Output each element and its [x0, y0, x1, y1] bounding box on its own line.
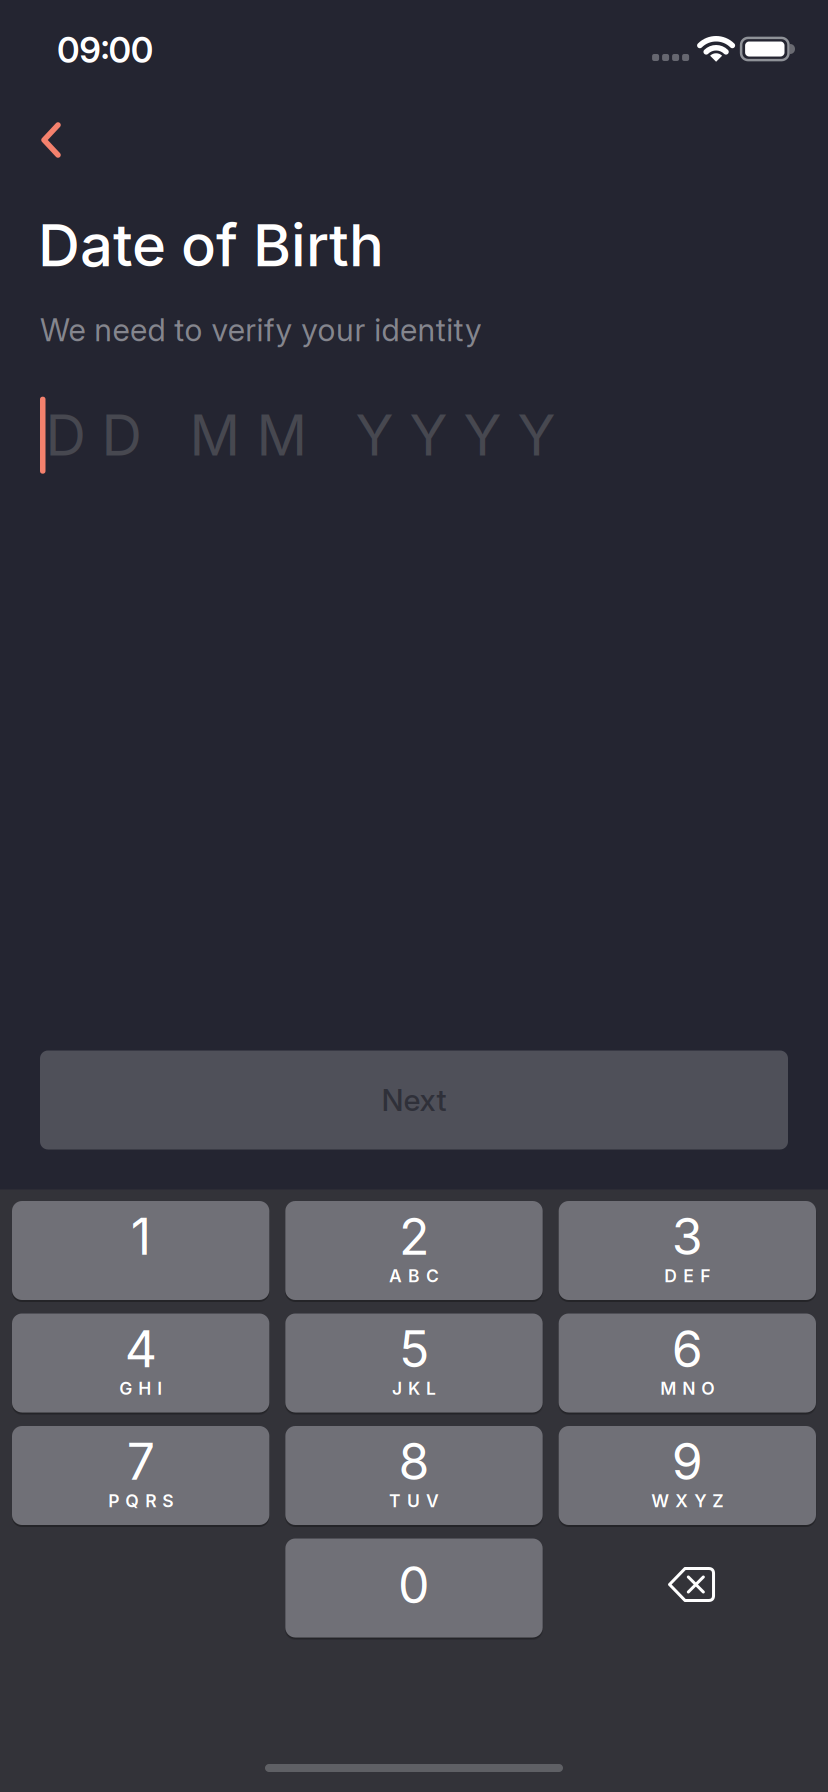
button[interactable]: 0	[285, 1538, 543, 1637]
staticText: PQRS	[108, 1490, 173, 1512]
staticText: 7	[127, 1431, 155, 1492]
staticText: 4	[125, 1319, 157, 1379]
button[interactable]: 4	[12, 1313, 269, 1412]
staticText: 1	[131, 1206, 151, 1267]
staticText: JKL	[392, 1378, 436, 1399]
button[interactable]: 9	[559, 1426, 816, 1525]
button[interactable]: Delete	[559, 1538, 816, 1637]
button[interactable]: 7	[12, 1426, 269, 1525]
button[interactable]: 6	[559, 1313, 816, 1412]
staticText: 3	[672, 1206, 703, 1267]
button[interactable]: 2	[285, 1201, 543, 1300]
staticText: 09:00	[57, 29, 154, 71]
button[interactable]: 8	[285, 1426, 543, 1525]
staticText: TUV	[389, 1490, 439, 1512]
button[interactable]: 5	[285, 1313, 543, 1412]
staticText: 2	[399, 1206, 429, 1267]
staticText: 8	[398, 1431, 429, 1492]
staticText: Next	[381, 1082, 446, 1118]
staticText: WXYZ	[651, 1490, 723, 1512]
staticText: Date of Birth	[38, 210, 384, 280]
staticText: ABC	[389, 1265, 439, 1287]
staticText: MNO	[660, 1378, 714, 1399]
button[interactable]: Next	[40, 1050, 788, 1149]
staticText: 5	[399, 1319, 429, 1379]
staticText: DD MM YYYY	[45, 401, 555, 469]
staticText: 6	[672, 1319, 703, 1379]
staticText: GHI	[119, 1378, 162, 1399]
button[interactable]: 3	[559, 1201, 816, 1300]
staticText: DEF	[664, 1265, 710, 1287]
button[interactable]: Back	[44, 125, 58, 155]
staticText: We need to verify your identity	[40, 311, 482, 349]
button[interactable]: 1	[12, 1201, 269, 1300]
staticText: 0	[398, 1555, 430, 1615]
staticText: 9	[672, 1431, 703, 1492]
